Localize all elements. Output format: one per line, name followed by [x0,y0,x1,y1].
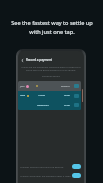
button[interactable]: Total [18,91,81,100]
staticText: 48.00 [64,94,70,97]
staticText: amount [61,85,70,88]
button[interactable]: Settlement [18,100,81,110]
staticText: 120.00 [38,94,46,97]
button[interactable]: Back [20,58,25,63]
staticText: Total [20,94,26,97]
staticText: Actually settle with the payment keep it… [20,174,71,177]
button[interactable]: Transfer amount and clear the balance [18,162,84,171]
staticText: 37.00 [64,104,70,107]
button[interactable]: Actually settle with the payment keep it… [18,171,84,180]
staticText: Record a payment [26,58,53,62]
staticText: Josh [20,85,25,88]
staticText: payment details [18,74,84,77]
staticText: See the fastest way to settle up with ju… [11,19,93,36]
button[interactable]: Row action [74,103,79,107]
staticText: These are the payments someone owes or e… [21,65,81,71]
staticText: Transfer amount and clear the balance [20,165,64,168]
button[interactable]: Header action [74,84,79,88]
button[interactable]: Row action [74,94,79,98]
staticText: Settlement [37,104,49,107]
